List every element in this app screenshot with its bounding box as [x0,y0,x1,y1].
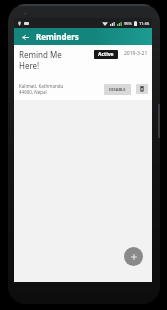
button[interactable]: Back [19,31,31,43]
staticText: Reminders [36,31,79,42]
button[interactable]: Delete reminder [136,84,148,94]
button[interactable]: Remind Me [14,45,152,100]
staticText: Kalimati, Kathmandu [19,83,64,89]
button[interactable]: Active [94,50,118,59]
staticText: 95% [124,21,132,26]
staticText: Here! [19,60,40,71]
staticText: 44600, Nepal [19,89,47,95]
staticText: 2019-3-21 [124,50,148,57]
staticText: Active [98,51,114,58]
staticText: 11:56 [139,21,150,26]
button[interactable]: Add reminder [124,247,143,266]
staticText: DISABLE [109,87,126,92]
staticText: Remind Me [19,49,62,60]
button[interactable]: DISABLE [104,84,131,95]
